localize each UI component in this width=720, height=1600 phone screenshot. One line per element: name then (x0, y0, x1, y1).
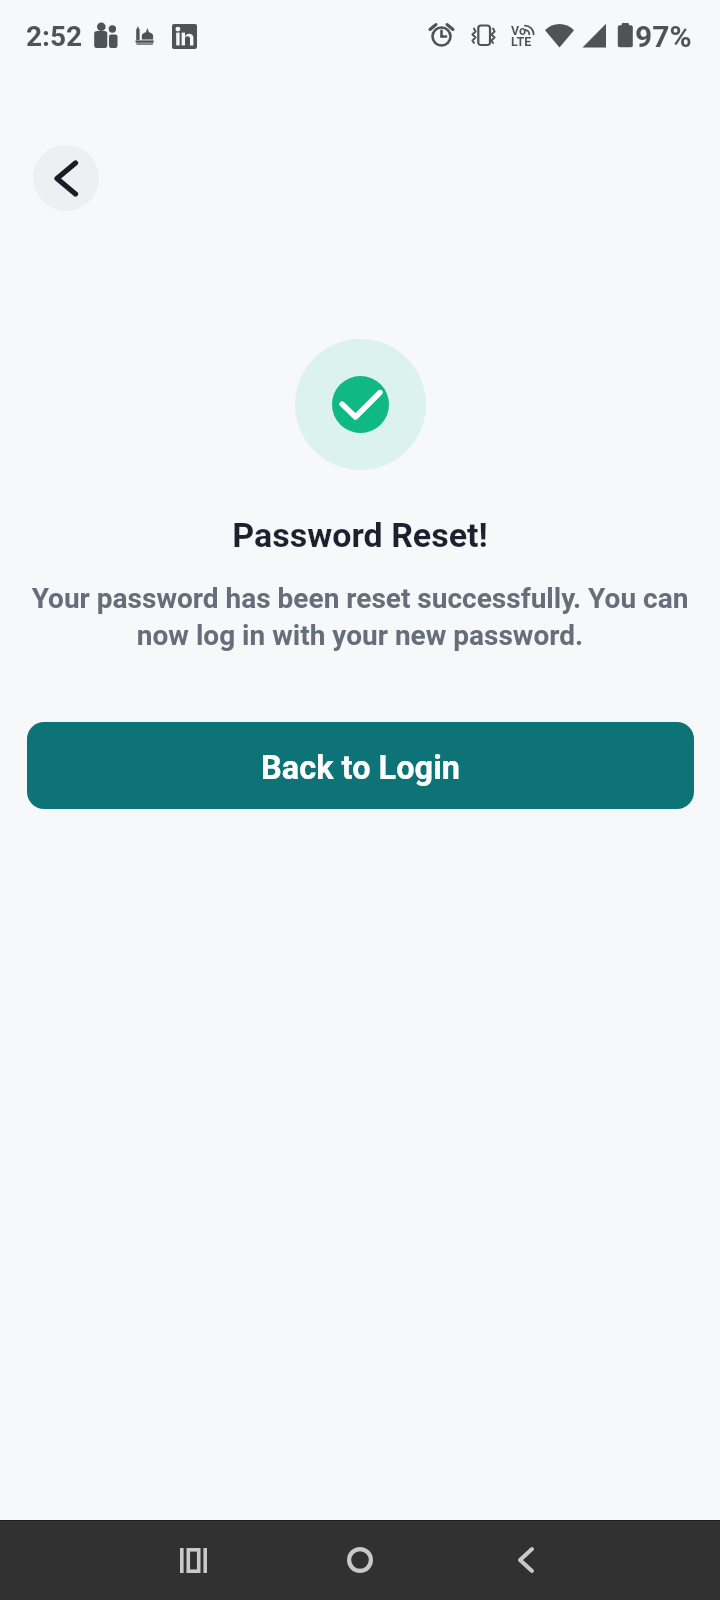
button[interactable]: Recent apps (163, 1530, 223, 1590)
button[interactable]: Back (496, 1530, 556, 1590)
staticText: Password Reset! (0, 515, 720, 555)
staticText: 97% (635, 19, 692, 54)
button[interactable]: Back to Login (27, 722, 694, 809)
staticText: 2:52 (26, 20, 83, 53)
staticText: Vo (511, 23, 526, 38)
staticText: Your password has been reset successfull… (12, 582, 708, 652)
staticText: Back to Login (261, 749, 460, 787)
button[interactable]: Back (33, 145, 99, 211)
button[interactable]: Home (330, 1530, 390, 1590)
staticText: LTE (511, 34, 532, 49)
